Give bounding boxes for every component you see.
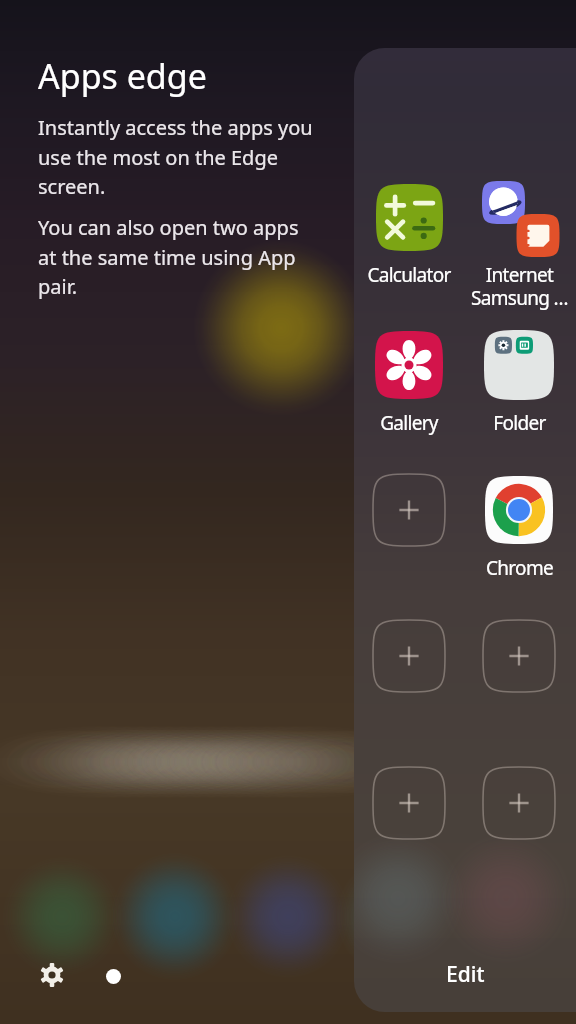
button[interactable]: Page 1 of 2 bbox=[100, 963, 126, 989]
button[interactable] bbox=[357, 766, 461, 840]
staticText: Calculator bbox=[367, 262, 451, 288]
staticText: Apps edge bbox=[38, 53, 207, 99]
button[interactable]: Internet Samsung … bbox=[467, 180, 571, 311]
staticText: You can also open two apps at the same t… bbox=[38, 214, 316, 300]
staticText: Edit bbox=[446, 960, 485, 989]
staticText: Chrome bbox=[486, 555, 553, 581]
staticText: Folder bbox=[493, 410, 546, 436]
button[interactable] bbox=[357, 619, 461, 693]
button[interactable]: Edit bbox=[354, 953, 576, 995]
button[interactable]: Chrome bbox=[467, 473, 571, 581]
button[interactable] bbox=[467, 619, 571, 693]
button[interactable]: Settings bbox=[30, 953, 74, 997]
button[interactable] bbox=[357, 473, 461, 547]
button[interactable]: Folder bbox=[467, 328, 571, 436]
button[interactable]: Calculator bbox=[357, 180, 461, 288]
staticText: Instantly access the apps you use the mo… bbox=[38, 114, 316, 200]
button[interactable] bbox=[467, 766, 571, 840]
button[interactable]: Gallery bbox=[357, 328, 461, 436]
staticText: Internet Samsung … bbox=[471, 262, 568, 311]
staticText: Gallery bbox=[380, 410, 438, 436]
